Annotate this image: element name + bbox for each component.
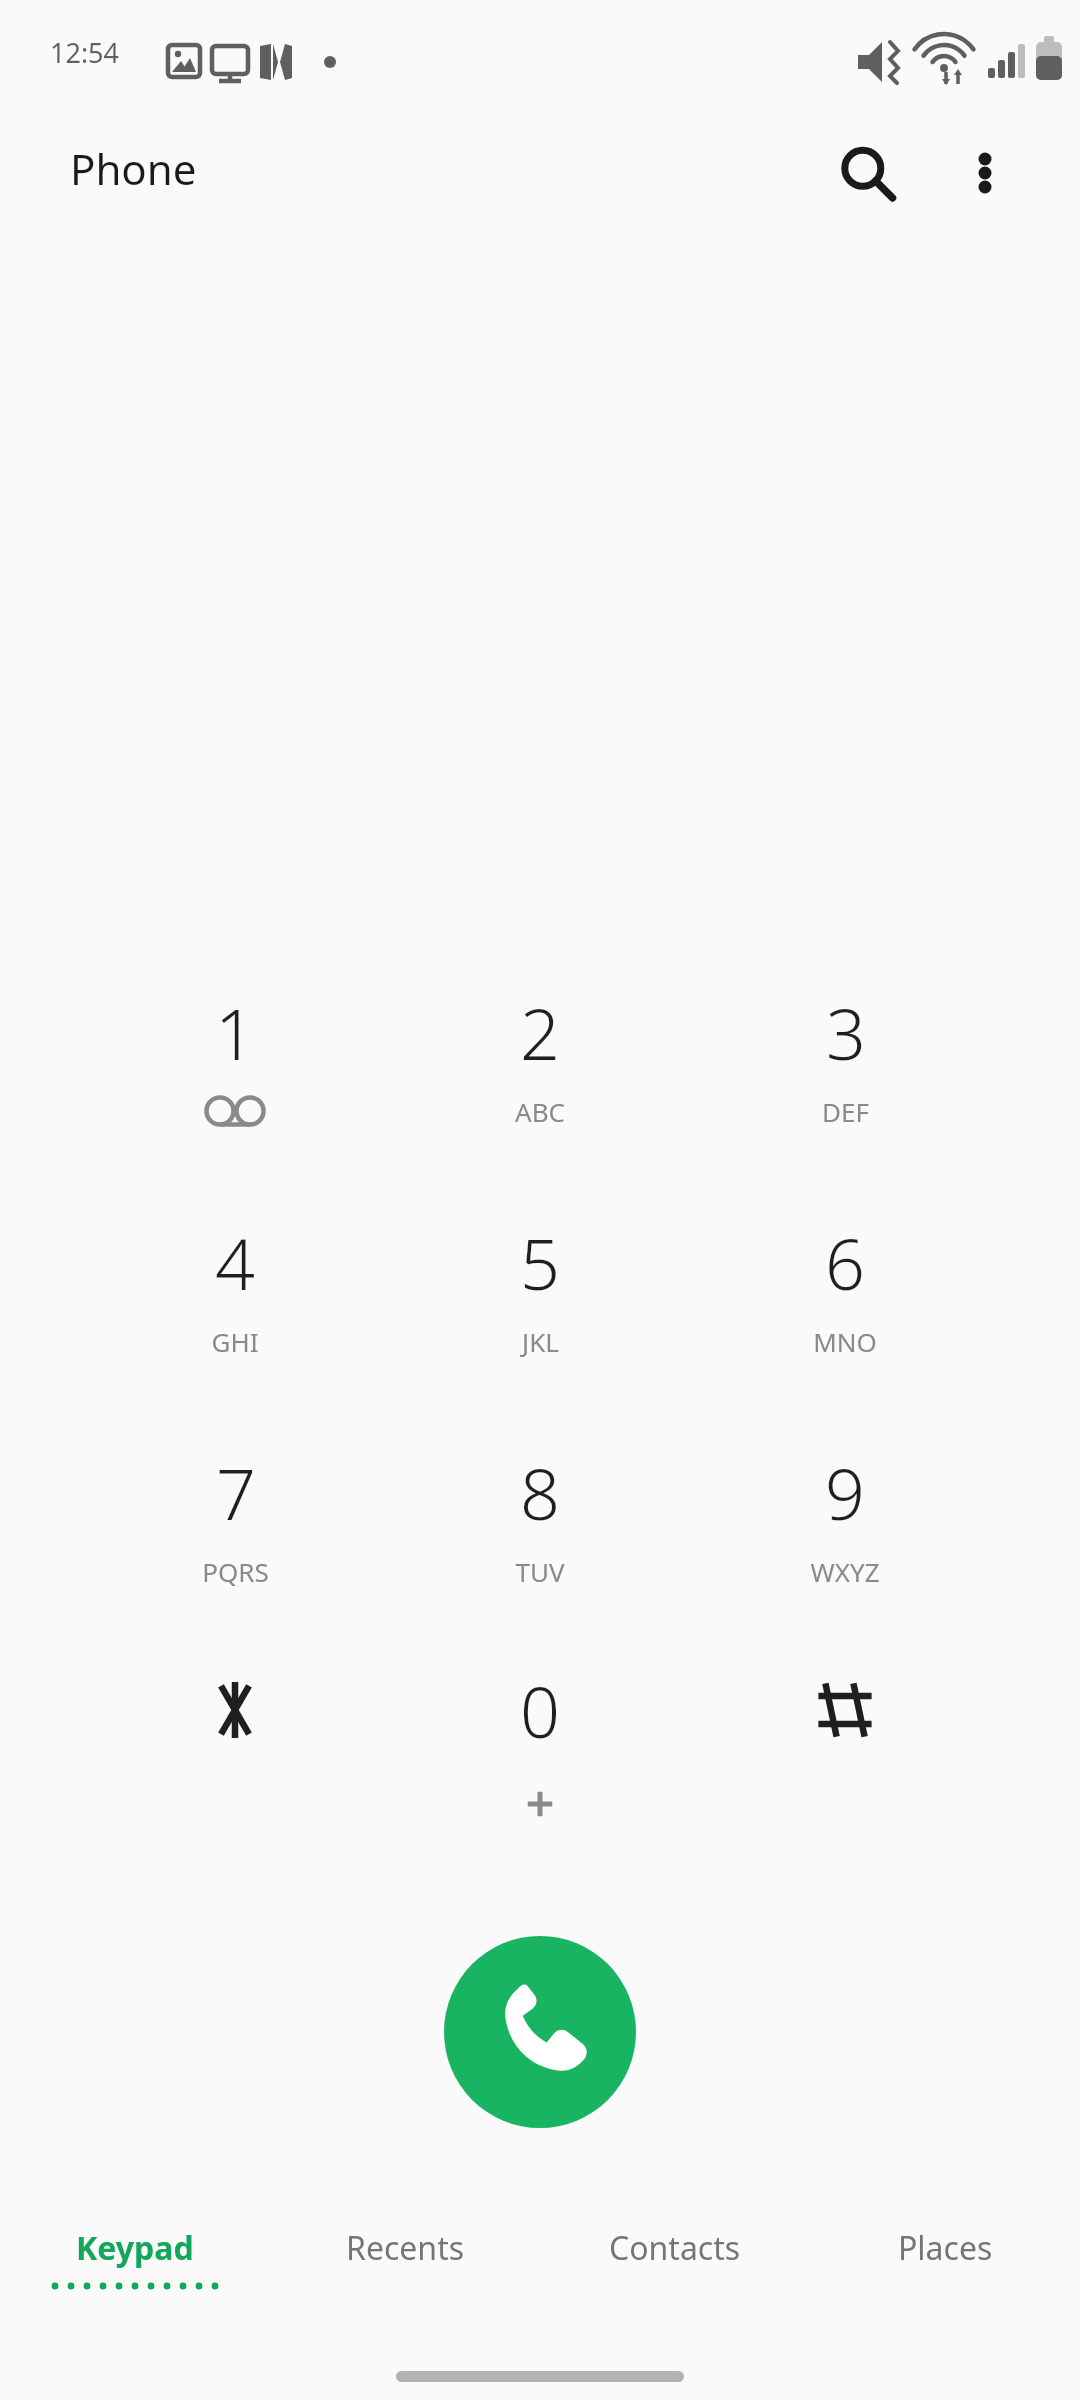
button[interactable]: 8 [415, 1432, 665, 1632]
button[interactable]: Contacts [540, 2208, 810, 2328]
button[interactable]: 6 [720, 1202, 970, 1402]
button[interactable]: 3 [720, 972, 970, 1172]
staticText: 3 [826, 985, 866, 1080]
button[interactable]: 9 [720, 1432, 970, 1632]
button[interactable]: Search [812, 118, 922, 228]
button[interactable]: Recents [270, 2208, 540, 2328]
staticText: 7 [216, 1445, 256, 1540]
staticText: 1 [215, 985, 255, 1080]
button[interactable]: 1 [110, 972, 360, 1172]
staticText: 9 [825, 1445, 865, 1540]
button[interactable]: 7 [110, 1432, 360, 1632]
staticText: 0 [520, 1663, 560, 1758]
staticText: Contacts [609, 2226, 741, 2270]
staticText: DEF [822, 1094, 869, 1129]
button[interactable]: 4 [110, 1202, 360, 1402]
button[interactable]: Places [810, 2208, 1080, 2328]
staticText: MNO [813, 1324, 877, 1359]
staticText: 12:54 [50, 34, 120, 71]
staticText: TUV [515, 1554, 565, 1589]
button[interactable]: More options [930, 118, 1040, 228]
staticText: Recents [346, 2226, 465, 2270]
button[interactable]: 2 [415, 972, 665, 1172]
button[interactable] [110, 1650, 360, 1850]
staticText: 2 [520, 985, 560, 1080]
staticText: Places [898, 2226, 993, 2270]
staticText: Keypad [76, 2226, 194, 2270]
staticText: ABC [515, 1094, 565, 1129]
staticText: 8 [520, 1445, 560, 1540]
staticText: 4 [215, 1215, 255, 1310]
staticText: WXYZ [810, 1554, 880, 1589]
staticText: 6 [825, 1215, 865, 1310]
staticText: GHI [211, 1324, 259, 1359]
staticText: 5 [520, 1215, 560, 1310]
button[interactable] [720, 1650, 970, 1850]
button[interactable]: 0 [415, 1650, 665, 1850]
staticText: JKL [522, 1324, 559, 1359]
staticText: PQRS [202, 1554, 269, 1589]
staticText: Phone [70, 140, 197, 197]
button[interactable]: Keypad [0, 2208, 270, 2328]
button[interactable]: Call [444, 1936, 636, 2128]
button[interactable]: 5 [415, 1202, 665, 1402]
